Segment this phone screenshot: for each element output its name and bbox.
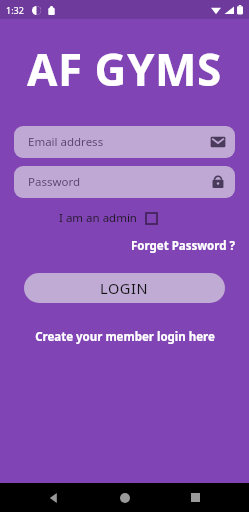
button[interactable]: Forget Password ?: [117, 235, 249, 257]
button[interactable]: Password: [14, 166, 235, 198]
staticText: 1:32: [6, 4, 24, 16]
button[interactable]: Home: [108, 483, 142, 512]
staticText: AF GYMS: [27, 39, 222, 99]
button[interactable]: Email address: [14, 126, 235, 158]
staticText: Email address: [28, 134, 104, 150]
staticText: Create your member login here: [35, 329, 215, 345]
other: Password: [210, 174, 226, 190]
button[interactable]: Create your member login here: [27, 326, 223, 348]
button[interactable]: Back: [37, 483, 71, 512]
other: Email: [210, 134, 226, 150]
staticText: Forget Password ?: [131, 238, 235, 254]
staticText: Password: [28, 174, 81, 190]
button[interactable]: Recents: [178, 483, 212, 512]
staticText: I am an admin: [59, 210, 137, 226]
staticText: LOGIN: [100, 278, 149, 298]
button[interactable]: LOGIN: [24, 273, 225, 303]
button[interactable]: I am an admin: [55, 206, 161, 230]
